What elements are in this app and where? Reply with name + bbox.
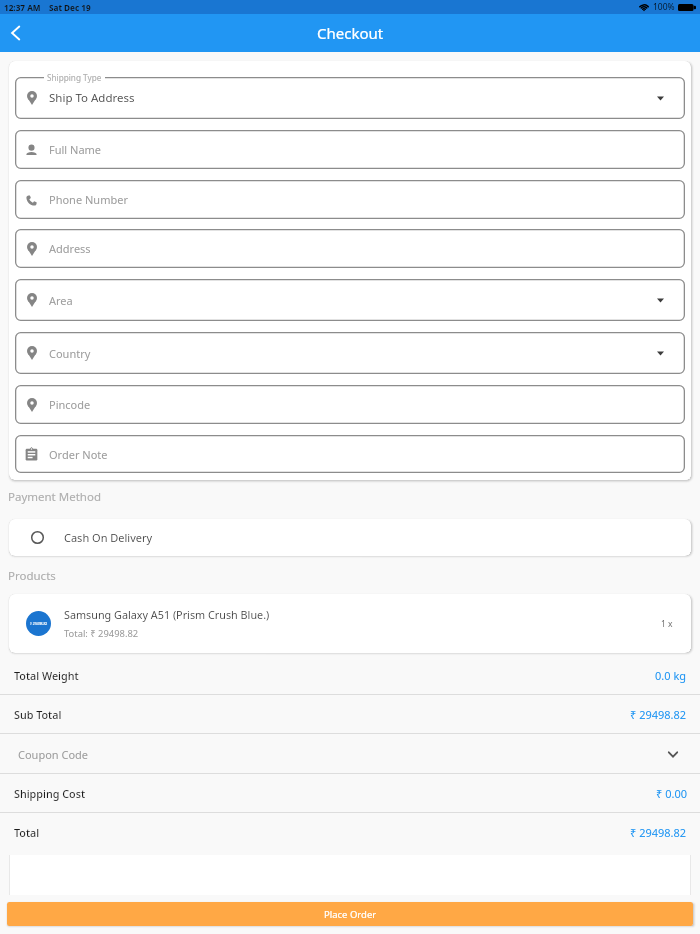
staticText: Sub Total — [14, 707, 62, 722]
staticText: Sat Dec 19 — [49, 2, 91, 13]
button[interactable]: Coupon Code — [0, 734, 700, 774]
staticText: Area — [49, 293, 73, 308]
staticText: Country — [49, 346, 91, 361]
staticText: Place Order — [324, 908, 377, 921]
button[interactable]: Address — [15, 229, 685, 268]
staticText: Full Name — [49, 142, 102, 157]
button[interactable]: Full Name — [15, 130, 685, 169]
button[interactable]: Cash On Delivery — [9, 519, 691, 556]
staticText: Shipping Type — [47, 72, 102, 83]
staticText: Total: ₹ 29498.82 — [64, 627, 139, 640]
button[interactable]: Phone Number — [15, 180, 685, 219]
staticText: Total — [14, 825, 40, 840]
button[interactable]: Back — [0, 14, 32, 52]
staticText: Address — [49, 241, 91, 256]
button[interactable]: Total Weight — [0, 655, 700, 695]
staticText: Pincode — [49, 397, 91, 412]
staticText: Total Weight — [14, 668, 79, 683]
staticText: 1 x — [661, 618, 673, 630]
staticText: Order Note — [49, 447, 108, 462]
staticText: Cash On Delivery — [64, 530, 153, 545]
button[interactable]: Shipping Cost — [0, 774, 700, 813]
button[interactable]: Country — [15, 332, 685, 374]
button[interactable]: Area — [15, 279, 685, 321]
staticText: Products — [8, 568, 56, 584]
staticText: Phone Number — [49, 192, 128, 207]
staticText: Ship To Address — [49, 90, 135, 106]
button[interactable]: Place Order — [7, 902, 693, 926]
staticText: ₹ 29498.82 — [30, 621, 48, 626]
staticText: Coupon Code — [18, 747, 89, 762]
staticText: Shipping Cost — [14, 786, 86, 801]
staticText: ₹ 29498.82 — [630, 707, 687, 722]
button[interactable]: Ship To Address — [15, 77, 685, 119]
button[interactable]: Total — [0, 813, 700, 852]
staticText: ₹ 29498.82 — [630, 825, 687, 840]
button[interactable]: Sub Total — [0, 695, 700, 734]
button[interactable]: ₹ 29498.82 — [9, 594, 691, 653]
button[interactable]: Order Note — [15, 435, 685, 473]
staticText: 12:37 AM — [4, 2, 41, 13]
staticText: Payment Method — [8, 489, 101, 505]
staticText: ₹ 0.00 — [656, 786, 687, 801]
staticText: 100% — [653, 1, 675, 13]
button[interactable]: Pincode — [15, 385, 685, 424]
staticText: Checkout — [317, 23, 384, 43]
staticText: Samsung Galaxy A51 (Prism Crush Blue.) — [64, 607, 270, 622]
staticText: 0.0 kg — [655, 668, 687, 683]
